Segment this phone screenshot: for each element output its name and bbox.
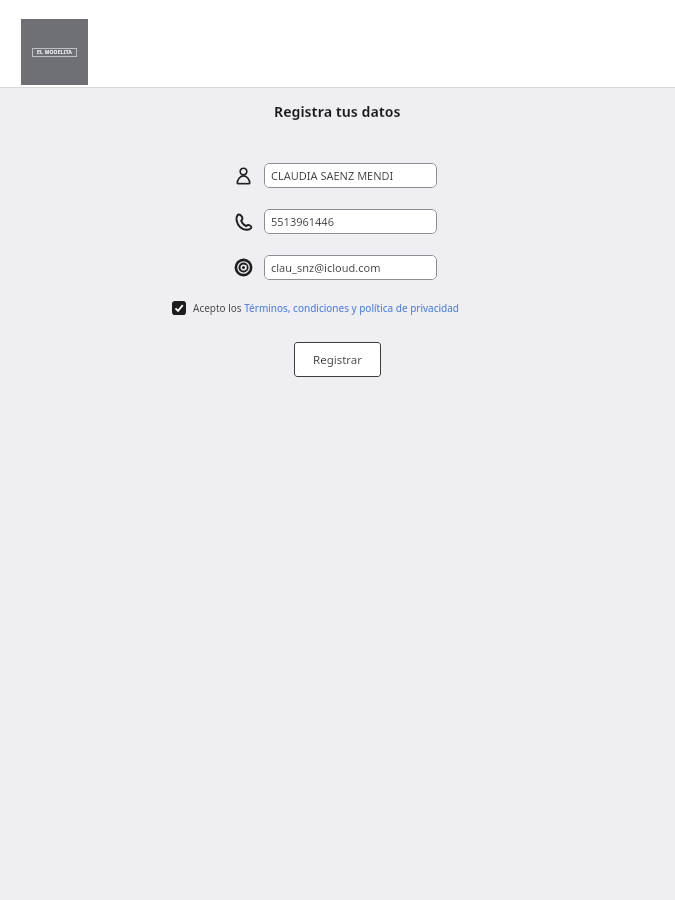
button[interactable]: Correo electrónico [233, 257, 254, 278]
button[interactable]: CLAUDIA SAENZ MENDI [264, 163, 437, 188]
button[interactable]: Acepto términos [172, 301, 460, 315]
staticText: Registrar [313, 352, 363, 368]
staticText: 5513961446 [271, 214, 334, 229]
button[interactable]: El Modelita logo [21, 19, 88, 85]
button[interactable]: Nombre [233, 165, 254, 186]
staticText: Registra tus datos [274, 102, 401, 121]
staticText: Acepto los Términos, condiciones y polít… [193, 301, 460, 315]
button[interactable]: Teléfono [233, 211, 254, 232]
button[interactable]: Acepto términos [172, 301, 186, 315]
button[interactable]: clau_snz@icloud.com [264, 255, 437, 280]
staticText: CLAUDIA SAENZ MENDI [271, 168, 394, 183]
button[interactable]: 5513961446 [264, 209, 437, 234]
staticText: EL MODELITA [37, 49, 73, 56]
button[interactable]: Registrar [294, 342, 381, 377]
staticText: clau_snz@icloud.com [271, 260, 381, 275]
